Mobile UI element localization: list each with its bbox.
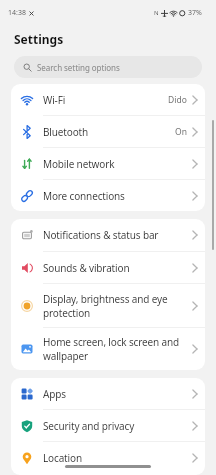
button[interactable]: Home screen, lock screen and [11, 328, 205, 370]
staticText: 37% [188, 8, 202, 18]
staticText: Apps [43, 387, 66, 401]
button[interactable]: More connections [11, 180, 205, 211]
staticText: Display, brightness and eye [43, 292, 168, 306]
button[interactable]: Notifications & status bar [11, 219, 205, 251]
staticText: Mobile network [43, 157, 115, 171]
staticText: On [175, 126, 187, 138]
button[interactable]: Location [11, 442, 205, 473]
button[interactable]: Security and privacy [11, 410, 205, 441]
button[interactable]: Display, brightness and eye [11, 284, 205, 327]
staticText: Settings [14, 31, 64, 47]
staticText: N [154, 9, 159, 17]
staticText: 14:38 [8, 8, 26, 18]
staticText: protection [43, 306, 91, 320]
staticText: Wi-Fi [43, 93, 66, 107]
staticText: More connections [43, 189, 125, 203]
button[interactable]: Search setting options [14, 56, 202, 78]
staticText: Dido [168, 94, 187, 106]
staticText: Sounds & vibration [43, 261, 130, 275]
button[interactable]: Bluetooth [11, 116, 205, 147]
staticText: Bluetooth [43, 125, 89, 139]
button[interactable]: Apps [11, 378, 205, 409]
staticText: Security and privacy [43, 419, 135, 433]
staticText: Notifications & status bar [43, 228, 159, 242]
staticText: Home screen, lock screen and [43, 335, 179, 349]
staticText: Search setting options [37, 62, 120, 73]
staticText: wallpaper [43, 349, 88, 363]
staticText: Location [43, 451, 82, 465]
button[interactable]: Mobile network [11, 148, 205, 179]
button[interactable]: Sounds & vibration [11, 252, 205, 283]
button[interactable]: Wi-Fi [11, 84, 205, 115]
